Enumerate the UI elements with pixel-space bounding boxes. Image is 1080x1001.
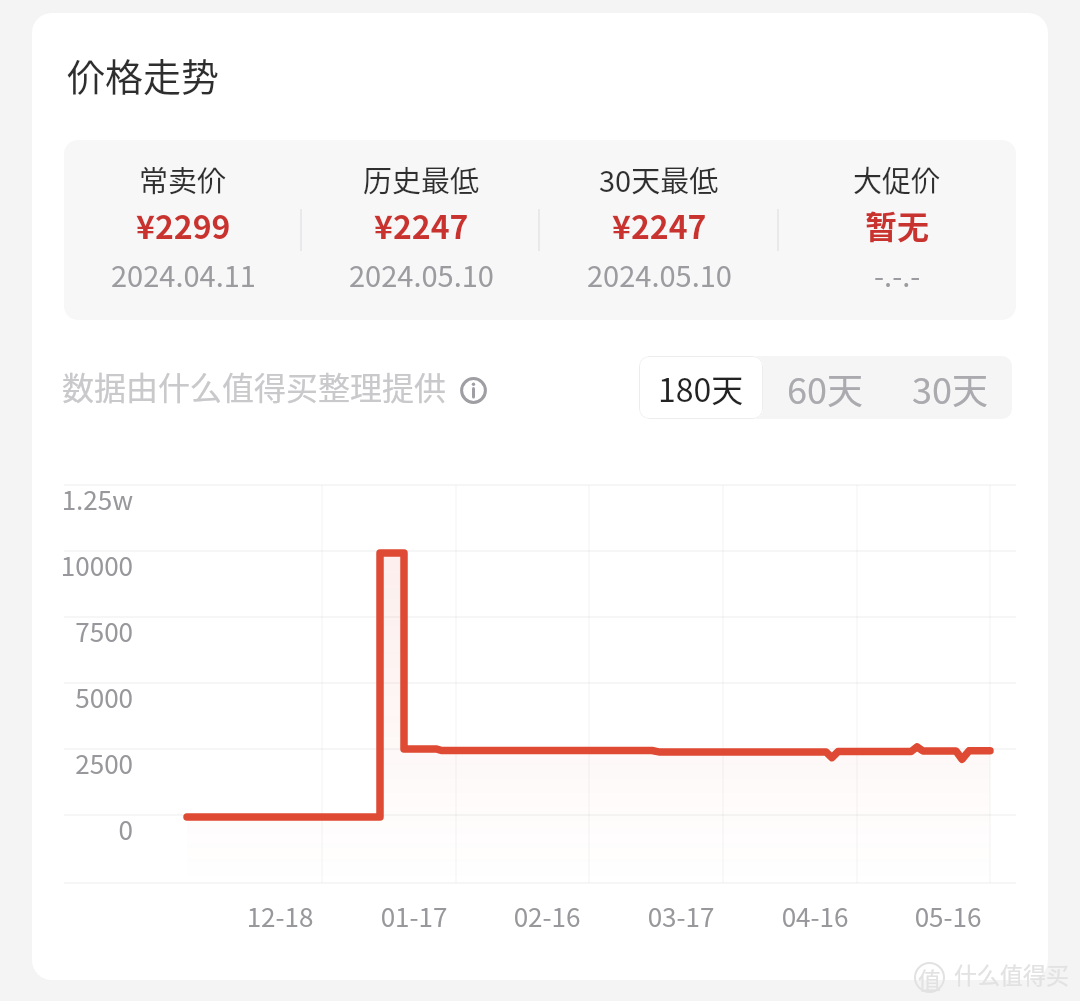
staticText: 什么值得买 [954, 957, 1069, 990]
staticText: 2024.04.11 [111, 253, 256, 295]
staticText: 180天 [658, 365, 744, 411]
staticText: 2500 [33, 744, 133, 782]
staticText: 0 [33, 810, 133, 848]
staticText: 7500 [33, 612, 133, 650]
staticText: 1.25w [33, 480, 133, 518]
staticText: 30天 [912, 362, 988, 414]
staticText: 02-16 [487, 897, 607, 935]
staticText: 01-17 [354, 897, 474, 935]
button[interactable]: 常卖价 [64, 140, 302, 320]
staticText: 大促价 [853, 158, 941, 200]
staticText: 值 [918, 962, 941, 993]
staticText: ¥2247 [612, 202, 707, 248]
staticText: 10000 [33, 546, 133, 584]
staticText: 04-16 [755, 897, 875, 935]
staticText: 常卖价 [139, 158, 227, 200]
staticText: 5000 [33, 678, 133, 716]
button[interactable]: 数据由什么值得买整理提供 [62, 363, 487, 409]
staticText: 2024.05.10 [587, 253, 732, 295]
staticText: -.-.- [874, 253, 921, 295]
staticText: 2024.05.10 [349, 253, 494, 295]
staticText: 价格走势 [67, 47, 220, 102]
staticText: 数据由什么值得买整理提供 [62, 363, 447, 409]
button[interactable]: 180天 [639, 356, 763, 419]
button[interactable]: 60天 [763, 356, 887, 419]
staticText: 历史最低 [363, 158, 480, 200]
staticText: 12-18 [220, 897, 340, 935]
staticText: 30天最低 [599, 158, 719, 200]
button[interactable]: 历史最低 [302, 140, 540, 320]
staticText: ¥2247 [374, 202, 469, 248]
button[interactable]: 大促价 [778, 140, 1016, 320]
staticText: 60天 [787, 362, 863, 414]
other: 数据说明 [460, 377, 487, 404]
staticText: 暂无 [865, 202, 930, 248]
staticText: 03-17 [621, 897, 741, 935]
staticText: 05-16 [888, 897, 1008, 935]
staticText: ¥2299 [136, 202, 231, 248]
button[interactable]: 30天 [887, 356, 1012, 419]
button[interactable]: 30天最低 [540, 140, 778, 320]
